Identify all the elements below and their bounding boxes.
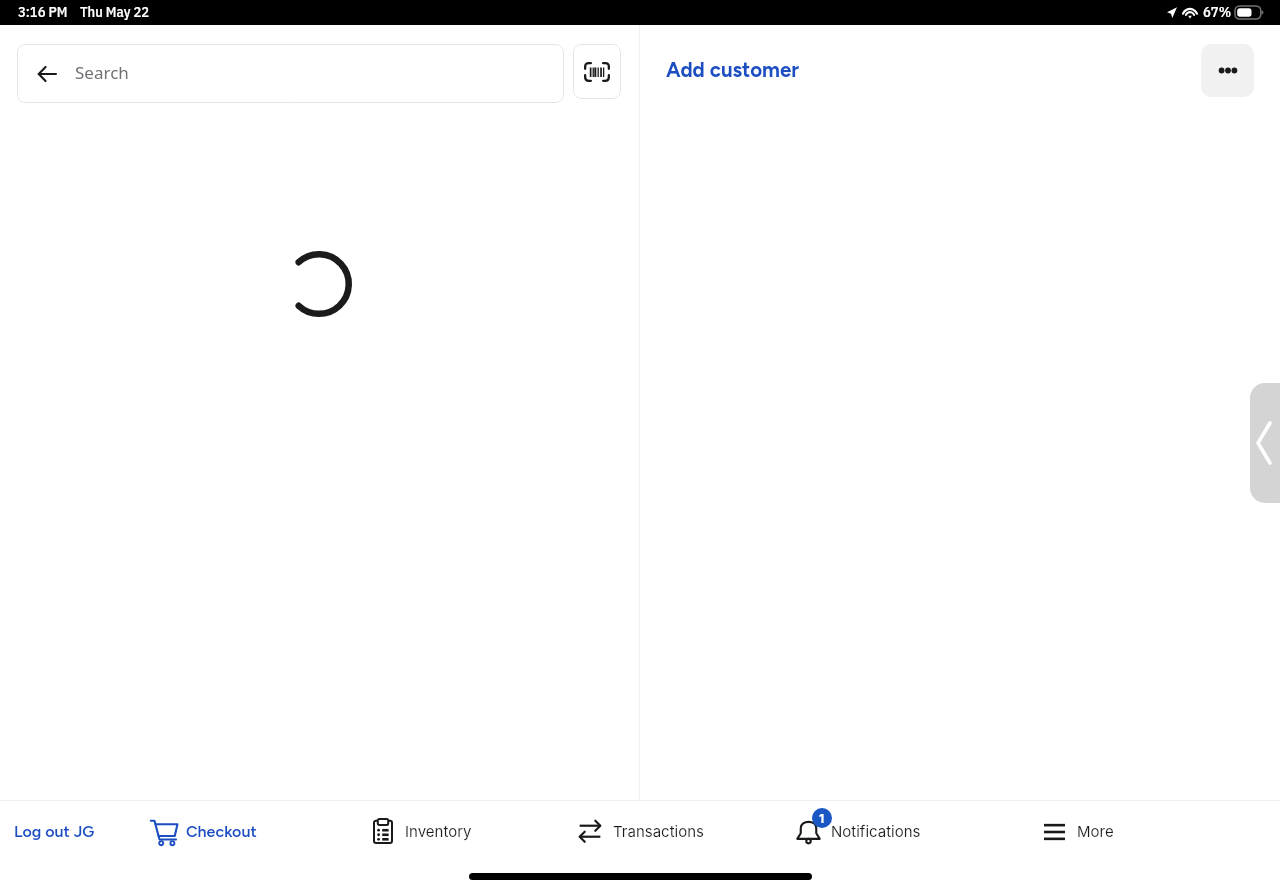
button[interactable]: Back	[17, 45, 75, 102]
button[interactable]: Log out JG	[0, 801, 150, 865]
button[interactable]: 1	[795, 801, 1045, 865]
staticText: More	[1077, 822, 1114, 840]
button[interactable]: Expand panel	[1250, 383, 1280, 503]
button[interactable]: Add customer	[658, 50, 808, 91]
staticText: 3:16 PM	[18, 2, 68, 21]
staticText: Notifications	[831, 822, 921, 840]
button[interactable]: Back	[17, 44, 564, 103]
staticText: Add customer	[666, 58, 800, 83]
button[interactable]: More options	[1201, 44, 1254, 97]
staticText: Transactions	[613, 822, 704, 840]
staticText: 1	[819, 811, 825, 826]
staticText: 67%	[1203, 2, 1232, 21]
staticText: Log out JG	[14, 822, 95, 841]
button[interactable]: More	[1045, 801, 1280, 865]
staticText: Search	[75, 61, 129, 84]
button[interactable]: Checkout	[150, 801, 375, 865]
staticText: Inventory	[405, 822, 472, 840]
staticText: Checkout	[186, 822, 257, 841]
button[interactable]: Scan barcode	[573, 44, 621, 99]
button[interactable]: Transactions	[580, 801, 795, 865]
button[interactable]: Inventory	[375, 801, 580, 865]
staticText: Thu May 22	[80, 2, 150, 21]
